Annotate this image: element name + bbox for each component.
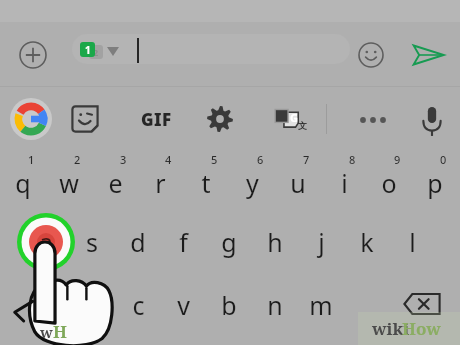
button[interactable]: Attach [16,38,50,72]
staticText: f [179,225,188,259]
staticText: H [53,320,67,342]
staticText: d [130,225,146,259]
button[interactable]: c [116,280,160,330]
button[interactable]: x [70,280,114,330]
button[interactable]: Translate [269,102,303,136]
button[interactable]: z [24,280,68,330]
button[interactable]: k [345,216,389,268]
staticText: t [201,166,211,200]
staticText: w [40,322,53,342]
button[interactable]: Settings [203,102,237,136]
staticText: g [221,225,237,259]
staticText: k [360,225,374,259]
button[interactable]: t [184,152,228,206]
staticText: How [402,317,441,340]
button[interactable]: Stickers [68,102,102,136]
staticText: GIF [141,108,172,131]
staticText: r [155,166,166,200]
staticText: w [59,166,79,200]
staticText: 9 [394,152,401,167]
button[interactable]: m [299,280,343,330]
button[interactable]: v [161,280,205,330]
button[interactable]: o [367,152,411,206]
staticText: s [86,225,98,259]
button[interactable]: p [413,152,457,206]
staticText: 4 [165,152,172,167]
staticText: h [267,225,283,259]
staticText: wiki [372,317,410,340]
button[interactable]: Select SIM [78,40,130,62]
staticText: 1 [28,152,35,167]
staticText: 7 [303,152,310,167]
staticText: o [381,166,397,200]
staticText: j [318,225,325,259]
button[interactable]: n [253,280,297,330]
button[interactable]: b [207,280,251,330]
button[interactable]: Google search [10,98,52,140]
button[interactable]: Emoji [356,40,386,70]
button[interactable]: h [253,216,297,268]
staticText: p [427,166,443,200]
staticText: x [85,288,99,322]
button[interactable]: Voice input [416,101,448,139]
staticText: y [246,166,259,200]
button[interactable]: l [390,216,434,268]
staticText: 文 [298,120,307,131]
button[interactable]: j [299,216,343,268]
staticText: l [409,225,416,259]
button[interactable]: i [322,152,366,206]
staticText: 2 [74,152,81,167]
staticText: m [309,288,333,322]
staticText: 6 [257,152,264,167]
staticText: 3 [120,152,127,167]
button[interactable]: e [93,152,137,206]
staticText: q [15,166,31,200]
button[interactable]: w [47,152,91,206]
staticText: z [40,288,52,322]
button[interactable]: a [24,216,68,268]
staticText: a [39,225,54,259]
staticText: 5 [211,152,218,167]
button[interactable]: q [1,152,45,206]
button[interactable]: g [207,216,251,268]
button[interactable] [72,34,350,64]
button[interactable]: d [116,216,160,268]
button[interactable]: y [230,152,274,206]
button[interactable]: u [276,152,320,206]
button[interactable]: Send [410,38,446,72]
button[interactable]: More options [352,104,394,136]
staticText: u [290,166,306,200]
staticText: e [108,166,123,200]
staticText: b [221,288,237,322]
staticText: c [132,288,145,322]
staticText: G [290,110,298,125]
staticText: n [267,288,283,322]
button[interactable]: GIF [130,100,182,138]
button[interactable]: f [161,216,205,268]
staticText: i [341,166,348,200]
button[interactable]: s [70,216,114,268]
button[interactable]: r [138,152,182,206]
staticText: 0 [440,152,447,167]
staticText: 2 [93,46,99,58]
staticText: a [39,225,54,259]
staticText: 8 [349,152,356,167]
staticText: v [177,288,190,322]
button[interactable]: Backspace [400,284,444,324]
staticText: 1 [85,43,91,57]
